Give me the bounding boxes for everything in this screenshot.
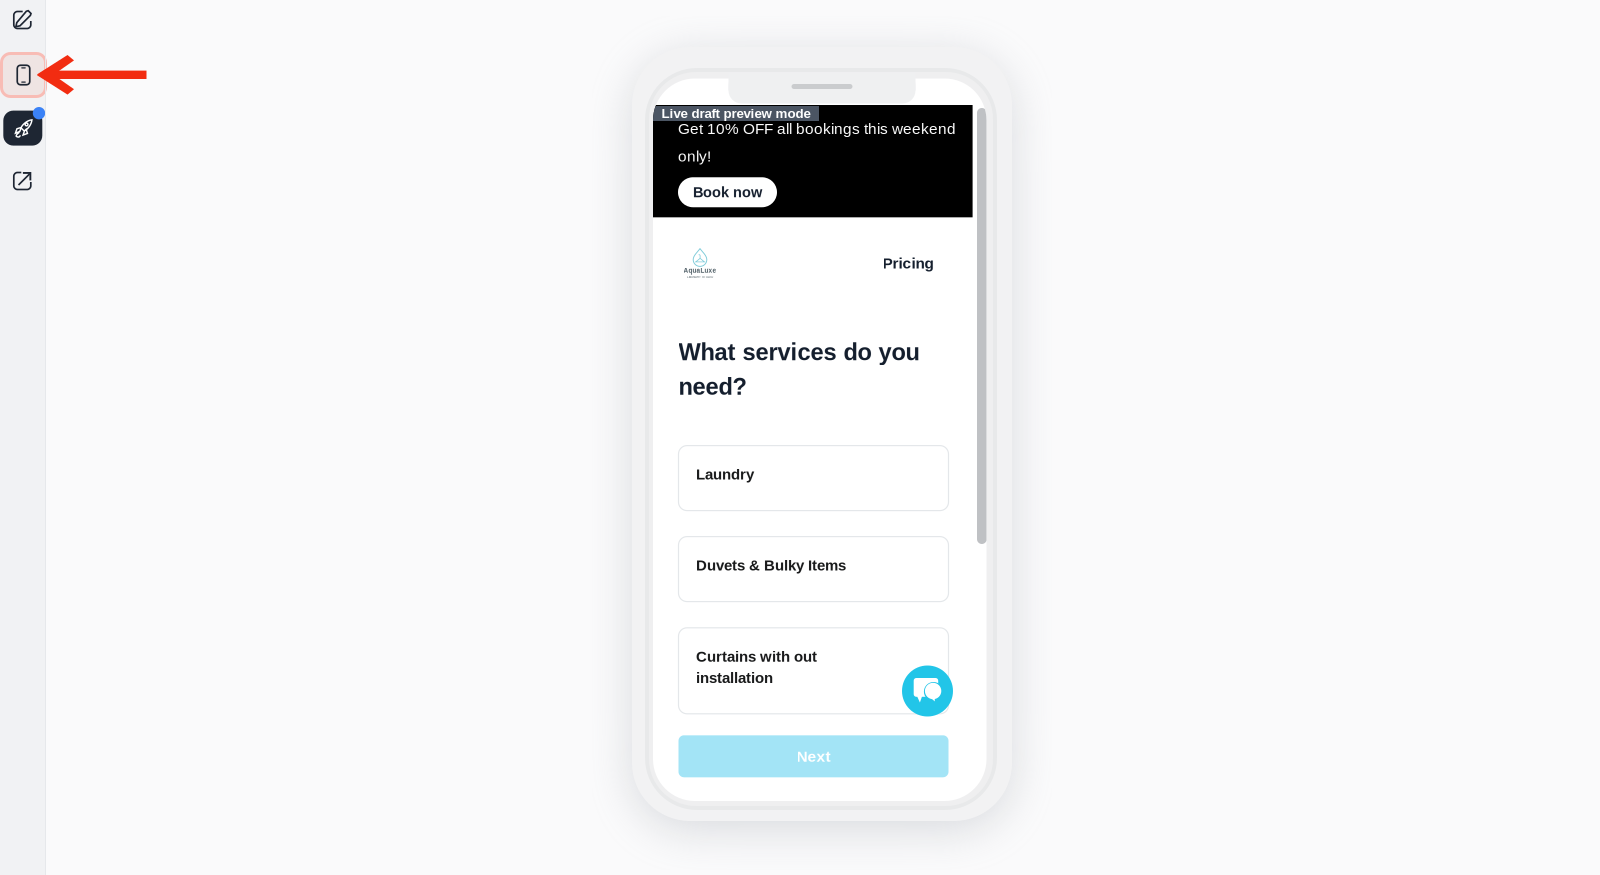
staticText: Duvets & Bulky Items — [696, 557, 846, 574]
button[interactable]: Book now — [678, 177, 777, 207]
staticText: Laundry — [696, 466, 754, 483]
button[interactable]: Publish — [3, 111, 45, 146]
staticText: Next — [796, 748, 830, 765]
button[interactable]: Open in new tab — [0, 159, 44, 203]
staticText: Pricing — [882, 254, 933, 272]
button[interactable]: Laundry — [678, 446, 948, 511]
button[interactable]: Open chat — [902, 665, 953, 716]
button[interactable]: Duvets & Bulky Items — [678, 537, 948, 602]
button[interactable]: Curtains with out installation — [678, 628, 948, 714]
staticText: What services do you need? — [678, 339, 919, 400]
staticText: Curtains with out installation — [696, 648, 817, 686]
staticText: Live draft preview mode — [661, 106, 810, 121]
button[interactable]: Preview on phone — [1, 53, 45, 96]
staticText: Book now — [693, 184, 762, 200]
staticText: AquaLuxe — [683, 267, 716, 274]
button[interactable]: Edit — [0, 0, 44, 42]
staticText: LAUNDRY STUDIO — [687, 275, 713, 278]
button[interactable]: Next — [678, 735, 948, 777]
staticText: Get 10% OFF all bookings this weekend on… — [678, 120, 956, 165]
